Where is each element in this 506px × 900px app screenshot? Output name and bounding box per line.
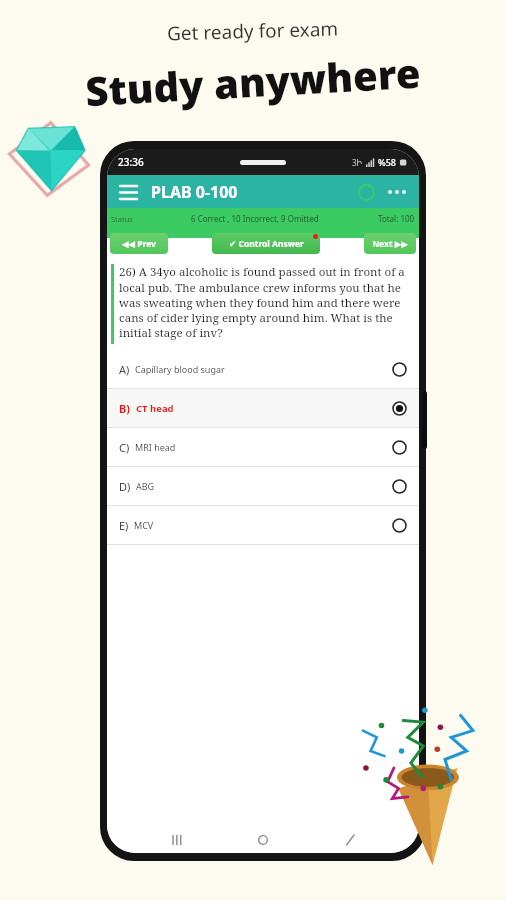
staticText: CT head — [136, 402, 174, 415]
button[interactable]: Back — [334, 827, 364, 853]
staticText: Next ▶▶ — [372, 238, 408, 250]
button[interactable]: E) — [107, 506, 419, 544]
button[interactable]: D) — [107, 467, 419, 505]
staticText: %58 — [378, 156, 396, 168]
button[interactable]: C) — [107, 428, 419, 466]
button[interactable]: ◀◀ Prev — [110, 233, 168, 254]
staticText: Study anywhere — [84, 45, 422, 117]
button[interactable]: More options — [385, 184, 409, 200]
staticText: Get ready for exam — [167, 16, 339, 46]
button[interactable]: ✔ Control Answer — [212, 233, 320, 254]
staticText: ◀◀ Prev — [122, 238, 156, 250]
button[interactable]: Open menu — [117, 181, 139, 203]
staticText: Total: 100 — [378, 213, 415, 224]
staticText: PLAB 0-100 — [151, 181, 238, 203]
staticText: B) — [119, 401, 131, 416]
button[interactable]: Home — [248, 827, 278, 853]
staticText: 23:36 — [118, 155, 144, 169]
button[interactable]: Next ▶▶ — [364, 233, 416, 254]
staticText: MCV — [134, 519, 154, 531]
staticText: Status — [111, 214, 133, 224]
button[interactable]: Recent apps — [163, 827, 193, 853]
staticText: 26) A 34yo alcoholic is found passed out… — [119, 264, 411, 340]
staticText: 3Ի — [352, 157, 363, 168]
staticText: E) — [119, 518, 129, 533]
staticText: Capillary blood sugar — [135, 363, 225, 375]
staticText: ABG — [136, 480, 155, 492]
staticText: D) — [119, 479, 131, 494]
staticText: C) — [119, 440, 130, 455]
staticText: A) — [119, 362, 130, 377]
staticText: ✔ Control Answer — [229, 238, 304, 250]
button[interactable]: B) — [107, 389, 419, 427]
staticText: MRI head — [135, 441, 176, 453]
staticText: 6 Correct , 10 Incorrect, 9 Omitted — [191, 213, 319, 224]
button[interactable]: Timer — [355, 181, 377, 203]
button[interactable]: A) — [107, 350, 419, 388]
